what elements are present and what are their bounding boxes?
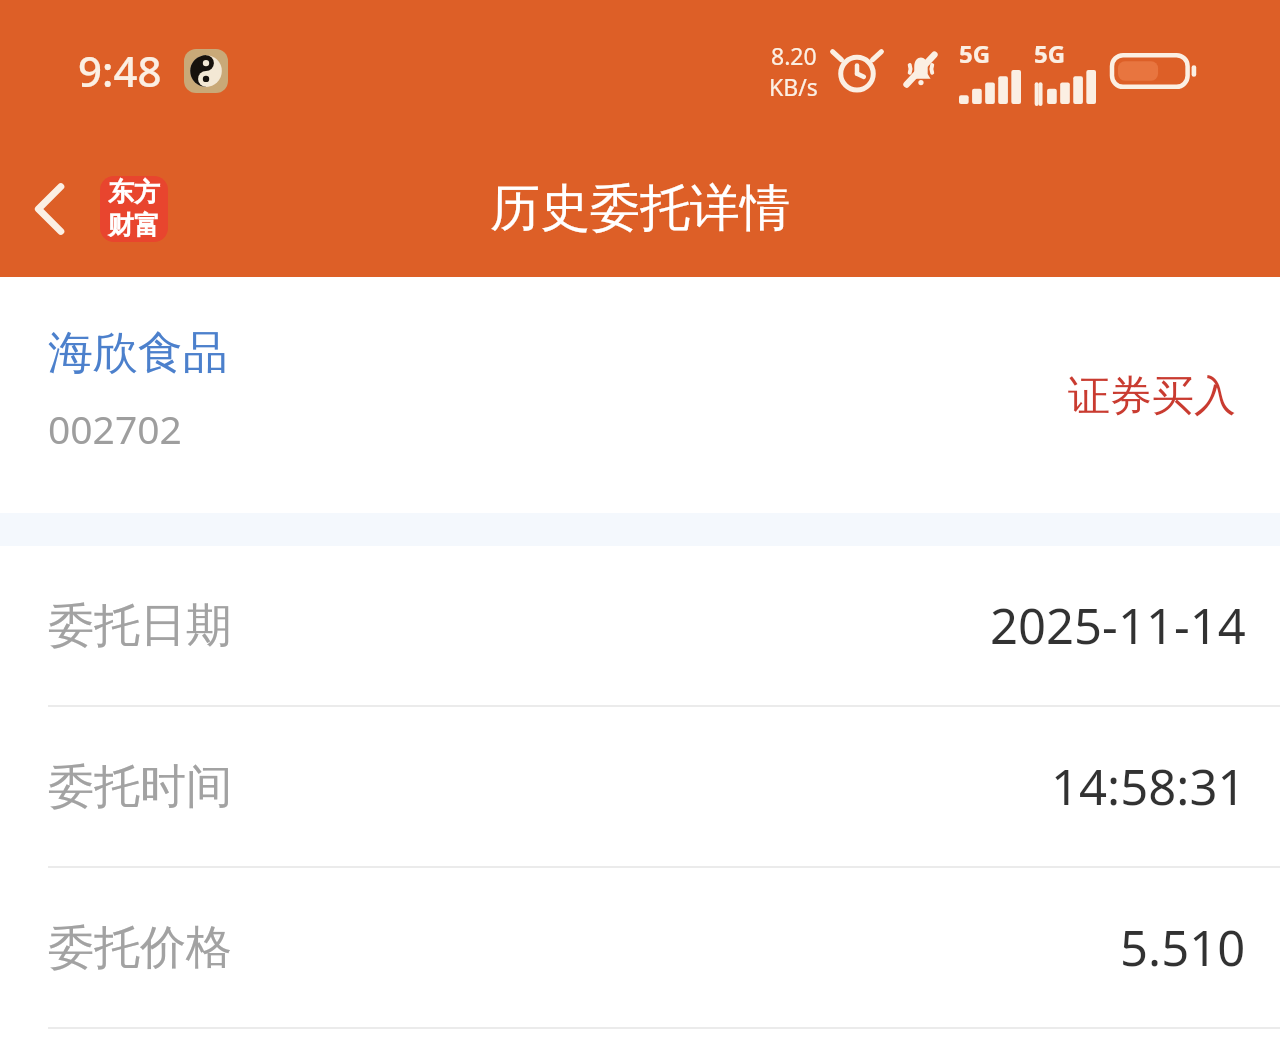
button[interactable]: 委托价格 — [0, 868, 1280, 1029]
button[interactable]: 委托时间 — [0, 707, 1280, 868]
staticText: 8.20 — [771, 40, 817, 71]
staticText: 海欣食品 — [48, 325, 228, 382]
staticText: 委托时间 — [48, 758, 232, 816]
staticText: 历史委托详情 — [0, 177, 1280, 240]
staticText: 委托价格 — [48, 919, 232, 977]
button[interactable]: Back — [20, 168, 180, 250]
staticText: 财富 — [108, 209, 160, 242]
staticText: 委托日期 — [48, 597, 232, 655]
staticText: 002702 — [48, 402, 182, 455]
staticText: KB/s — [769, 71, 818, 102]
staticText: 9:48 — [78, 42, 162, 99]
button[interactable]: 委托日期 — [0, 546, 1280, 707]
staticText: 5G — [1034, 37, 1066, 70]
staticText: 14:58:31 — [1051, 753, 1246, 820]
staticText: 5.510 — [1120, 914, 1246, 981]
button[interactable]: 海欣食品 — [0, 277, 1280, 513]
staticText: 东方 — [108, 176, 160, 209]
staticText: 2025-11-14 — [990, 592, 1246, 659]
staticText: 证券买入 — [1068, 370, 1236, 423]
staticText: 5G — [959, 37, 991, 70]
